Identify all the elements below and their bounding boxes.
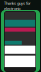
staticText: Thanks guys for electronic (4, 0, 31, 11)
staticText: stay positive (4, 11, 25, 16)
